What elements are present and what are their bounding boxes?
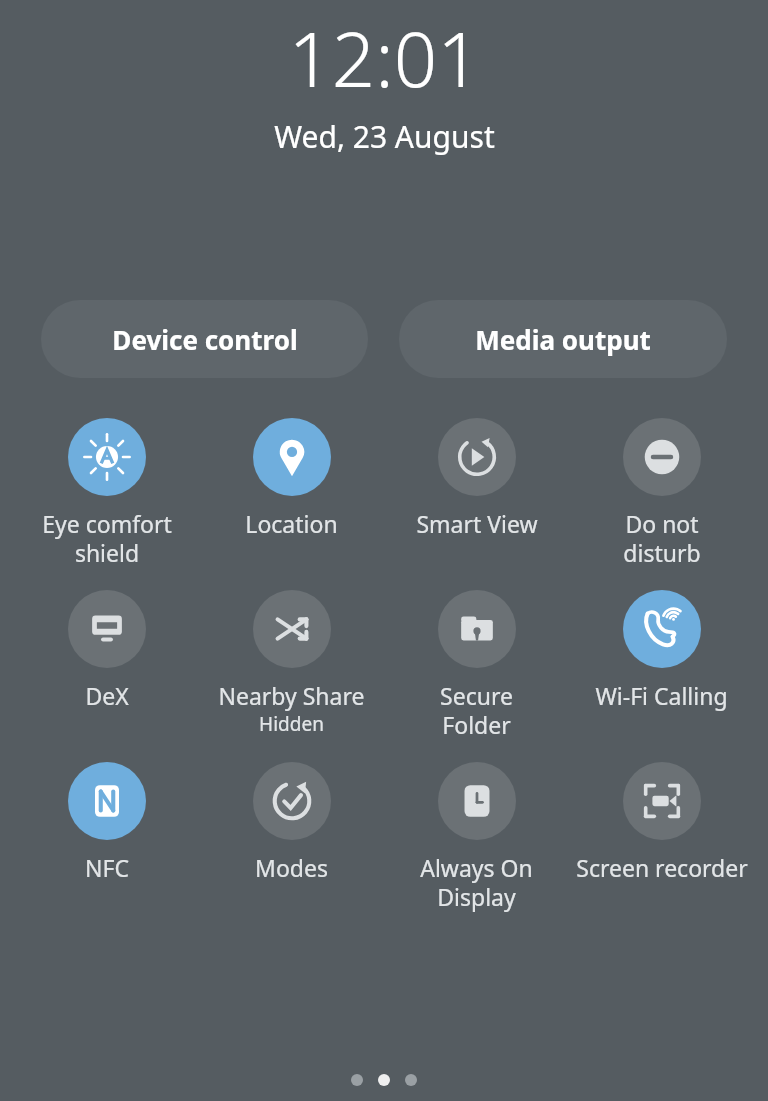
staticText: NFC [85,852,129,883]
staticText: Screen recorder [576,852,748,883]
button[interactable]: Wi-Fi Calling [569,590,754,711]
staticText: Wed, 23 August [274,116,495,157]
other: Location [253,418,331,496]
button[interactable]: Secure Folder [384,590,569,741]
button[interactable]: Modes [199,762,384,883]
button[interactable]: Do not disturb [569,418,754,569]
button[interactable]: Media output [399,300,727,378]
button[interactable]: Screen recorder [569,762,754,883]
other: Smart View [438,418,516,496]
other: NFC [68,762,146,840]
button[interactable]: Device control [41,300,368,378]
other: Secure Folder [438,590,516,668]
staticText: Media output [475,322,651,357]
other: Eye comfort shield [68,418,146,496]
button[interactable]: Eye comfort shield [14,418,199,569]
other: Wi-Fi Calling [623,590,701,668]
other: Nearby Share [253,590,331,668]
staticText: Secure Folder [440,680,513,741]
staticText: Location [245,508,338,539]
staticText: Eye comfort shield [42,508,172,569]
staticText: Device control [112,322,298,357]
staticText: Wi-Fi Calling [595,680,728,711]
staticText: Hidden [259,711,324,737]
staticText: Modes [255,852,328,883]
staticText: Always On Display [420,852,533,913]
button[interactable]: Smart View [384,418,569,539]
other: Do not disturb [623,418,701,496]
staticText: 12:01 [288,6,481,110]
button[interactable]: Location [199,418,384,539]
staticText: DeX [85,680,129,711]
staticText: Smart View [416,508,538,539]
other: Always On Display [438,762,516,840]
other: Modes [253,762,331,840]
button[interactable]: DeX [14,590,199,711]
button[interactable]: NFC [14,762,199,883]
other: DeX [68,590,146,668]
button[interactable]: Always On Display [384,762,569,913]
staticText: Do not disturb [623,508,701,569]
staticText: Nearby Share [218,680,365,711]
button[interactable]: Nearby Share [199,590,384,737]
other: Screen recorder [623,762,701,840]
